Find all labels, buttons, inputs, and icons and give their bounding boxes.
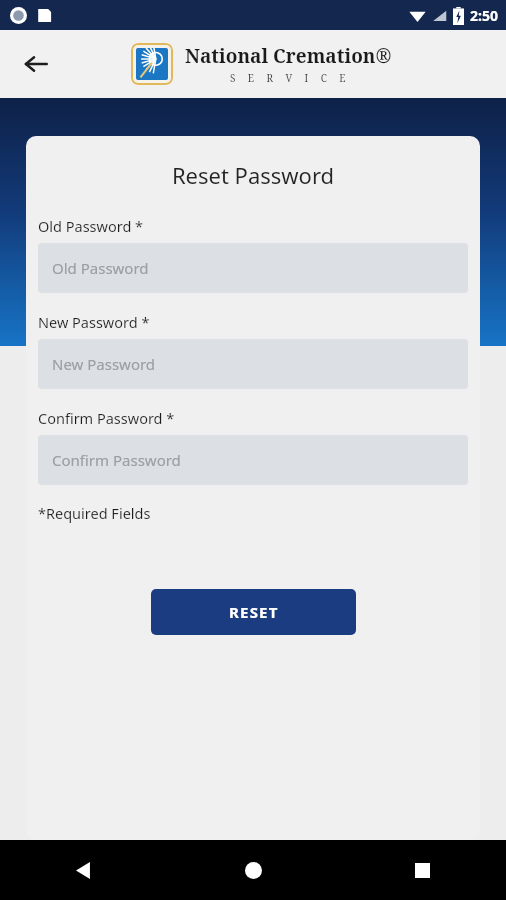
button[interactable]: Old Password xyxy=(38,243,468,293)
staticText: *Required Fields xyxy=(38,503,151,523)
button[interactable]: Confirm Password xyxy=(38,435,468,485)
button[interactable]: New Password xyxy=(38,339,468,389)
staticText: Confirm Password xyxy=(52,450,181,470)
button[interactable]: Home xyxy=(229,846,277,894)
staticText: New Password * xyxy=(38,312,150,332)
button[interactable]: Recent apps xyxy=(398,846,446,894)
button[interactable]: Back xyxy=(60,846,108,894)
staticText: Old Password xyxy=(52,258,149,278)
staticText: RESET xyxy=(229,602,279,622)
staticText: Old Password * xyxy=(38,216,144,236)
button[interactable]: RESET xyxy=(151,589,356,635)
button[interactable]: Back xyxy=(14,42,58,86)
staticText: S E R V I C E xyxy=(230,71,348,85)
staticText: National Cremation® xyxy=(185,43,392,69)
staticText: Reset Password xyxy=(38,160,468,190)
staticText: 2:50 xyxy=(470,6,498,25)
staticText: New Password xyxy=(52,354,156,374)
staticText: Confirm Password * xyxy=(38,408,175,428)
